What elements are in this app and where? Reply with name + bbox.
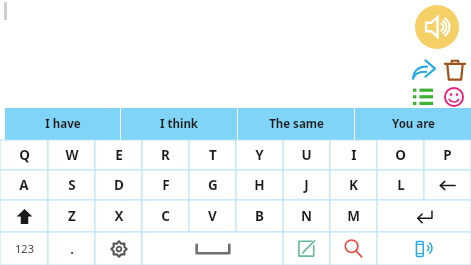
button[interactable]: B xyxy=(236,200,283,232)
staticText: Q xyxy=(19,146,30,164)
button[interactable]: U xyxy=(283,140,330,170)
staticText: C xyxy=(161,207,170,225)
button[interactable]: R xyxy=(142,140,189,170)
button[interactable]: H xyxy=(236,170,283,200)
button[interactable]: Shift xyxy=(0,200,48,232)
button[interactable]: W xyxy=(48,140,95,170)
button[interactable] xyxy=(142,232,283,265)
staticText: W xyxy=(65,146,79,164)
button[interactable]: You are xyxy=(355,108,471,140)
button[interactable]: Q xyxy=(0,140,48,170)
staticText: B xyxy=(255,207,264,225)
button[interactable]: X xyxy=(95,200,142,232)
button[interactable]: N xyxy=(283,200,330,232)
button[interactable]: G xyxy=(189,170,236,200)
button[interactable]: Speak xyxy=(415,5,459,49)
staticText: H xyxy=(254,176,265,194)
staticText: T xyxy=(209,146,217,164)
button[interactable]: C xyxy=(142,200,189,232)
button[interactable]: S xyxy=(48,170,95,200)
button[interactable]: Settings xyxy=(95,232,142,265)
button[interactable]: Share xyxy=(410,56,438,84)
button[interactable]: D xyxy=(95,170,142,200)
button[interactable]: 123 xyxy=(0,232,48,265)
button[interactable]: A xyxy=(0,170,48,200)
staticText: 123 xyxy=(15,241,34,256)
button[interactable]: Backspace xyxy=(424,170,471,200)
staticText: M xyxy=(347,207,360,225)
staticText: Y xyxy=(255,146,264,164)
button[interactable]: M xyxy=(330,200,377,232)
staticText: F xyxy=(162,176,170,194)
staticText: X xyxy=(114,207,124,225)
button[interactable]: K xyxy=(330,170,377,200)
button[interactable]: Z xyxy=(48,200,95,232)
staticText: U xyxy=(301,146,312,164)
button[interactable]: . xyxy=(48,232,95,265)
staticText: E xyxy=(115,146,123,164)
button[interactable]: Y xyxy=(236,140,283,170)
button[interactable]: Enter xyxy=(377,200,471,232)
staticText: J xyxy=(304,176,309,194)
button[interactable]: Compose xyxy=(283,232,330,265)
button[interactable]: E xyxy=(95,140,142,170)
button[interactable]: V xyxy=(189,200,236,232)
button[interactable]: I think xyxy=(121,108,237,140)
button[interactable]: Delete xyxy=(441,56,469,84)
staticText: The same xyxy=(269,116,324,132)
staticText: K xyxy=(349,176,358,194)
staticText: L xyxy=(397,176,405,194)
staticText: R xyxy=(161,146,170,164)
staticText: A xyxy=(19,176,29,194)
staticText: You are xyxy=(392,116,435,132)
staticText: O xyxy=(395,146,406,164)
staticText: Z xyxy=(68,207,76,225)
button[interactable]: Voice xyxy=(377,232,471,265)
staticText: P xyxy=(443,146,452,164)
staticText: G xyxy=(208,176,218,194)
staticText: S xyxy=(68,176,76,194)
button[interactable]: Emoji xyxy=(441,84,467,110)
staticText: I xyxy=(351,146,357,164)
staticText: . xyxy=(70,240,74,258)
staticText: V xyxy=(208,207,217,225)
button[interactable]: The same xyxy=(238,108,354,140)
button[interactable]: J xyxy=(283,170,330,200)
button[interactable]: Search xyxy=(330,232,377,265)
button[interactable]: F xyxy=(142,170,189,200)
staticText: I have xyxy=(45,116,81,132)
button[interactable]: List xyxy=(410,84,436,110)
staticText: D xyxy=(114,176,124,194)
button[interactable]: P xyxy=(424,140,471,170)
button[interactable]: I have xyxy=(5,108,120,140)
staticText: I think xyxy=(160,116,198,132)
button[interactable]: O xyxy=(377,140,424,170)
staticText: N xyxy=(301,207,312,225)
button[interactable]: T xyxy=(189,140,236,170)
button[interactable]: I xyxy=(330,140,377,170)
button[interactable]: L xyxy=(377,170,424,200)
